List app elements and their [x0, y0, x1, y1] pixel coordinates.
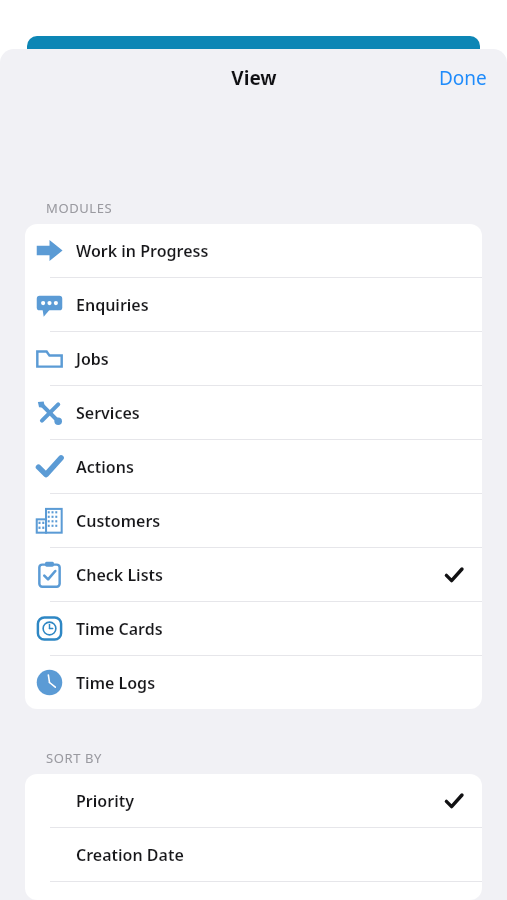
staticText: Time Cards: [76, 618, 163, 640]
button[interactable]: Actions: [25, 440, 482, 493]
staticText: Creation Date: [76, 844, 184, 866]
staticText: Customers: [76, 510, 161, 532]
staticText: Priority: [76, 790, 134, 812]
button[interactable]: Enquiries: [25, 278, 482, 331]
staticText: Actions: [76, 456, 134, 478]
staticText: Services: [76, 402, 140, 424]
button[interactable]: Jobs: [25, 332, 482, 385]
button[interactable]: Customers: [25, 494, 482, 547]
button[interactable]: Priority: [25, 774, 482, 827]
button[interactable]: Creation Date: [25, 828, 482, 881]
button[interactable]: Services: [25, 386, 482, 439]
staticText: SORT BY: [46, 749, 102, 767]
staticText: Enquiries: [76, 294, 149, 316]
staticText: Work in Progress: [76, 240, 209, 262]
button[interactable]: Time Cards: [25, 602, 482, 655]
staticText: Time Logs: [76, 672, 156, 694]
button[interactable]: Check Lists: [25, 548, 482, 601]
staticText: View: [231, 65, 277, 91]
button[interactable]: Time Logs: [25, 656, 482, 709]
button[interactable]: Done: [419, 57, 507, 99]
staticText: Check Lists: [76, 564, 163, 586]
staticText: Done: [439, 65, 487, 91]
staticText: Jobs: [76, 348, 109, 370]
staticText: MODULES: [46, 199, 113, 217]
button[interactable]: Work in Progress: [25, 224, 482, 277]
